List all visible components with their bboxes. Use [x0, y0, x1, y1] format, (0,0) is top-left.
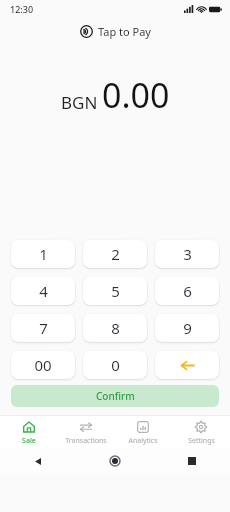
button[interactable]: Backspace [155, 351, 219, 379]
button[interactable]: Sale [0, 416, 57, 449]
button[interactable]: 8 [83, 314, 147, 342]
staticText: 6 [183, 281, 192, 301]
staticText: Sale [22, 436, 36, 446]
staticText: Confirm [96, 389, 135, 403]
staticText: Settings [188, 436, 215, 446]
staticText: 0.00 [102, 72, 170, 118]
staticText: 8 [111, 318, 120, 338]
staticText: 7 [39, 318, 48, 338]
staticText: 0 [111, 355, 120, 375]
staticText: 4 [39, 281, 48, 301]
button[interactable]: Tap to Pay [74, 22, 157, 41]
staticText: BGN [61, 91, 98, 114]
button[interactable]: 2 [83, 240, 147, 268]
staticText: 2 [111, 244, 120, 264]
button[interactable]: 0 [83, 351, 147, 379]
staticText: Transactions [65, 436, 107, 446]
button[interactable]: 3 [155, 240, 219, 268]
staticText: 1 [39, 244, 48, 264]
button[interactable]: Analytics [114, 416, 172, 449]
staticText: Tap to Pay [98, 24, 151, 39]
button[interactable]: 9 [155, 314, 219, 342]
button[interactable]: 5 [83, 277, 147, 305]
button[interactable]: 00 [11, 351, 75, 379]
staticText: 5 [111, 281, 120, 301]
staticText: 12:30 [10, 3, 34, 15]
staticText: 00 [34, 355, 52, 375]
button[interactable]: Settings [172, 416, 230, 449]
staticText: 9 [183, 318, 192, 338]
button[interactable]: 7 [11, 314, 75, 342]
staticText: 3 [183, 244, 192, 264]
button[interactable]: Back [34, 457, 43, 466]
button[interactable]: Transactions [57, 416, 114, 449]
button[interactable]: Confirm [11, 385, 219, 407]
button[interactable]: 6 [155, 277, 219, 305]
button[interactable]: 1 [11, 240, 75, 268]
button[interactable]: 4 [11, 277, 75, 305]
staticText: Analytics [128, 436, 158, 446]
button[interactable]: Home [110, 456, 120, 466]
